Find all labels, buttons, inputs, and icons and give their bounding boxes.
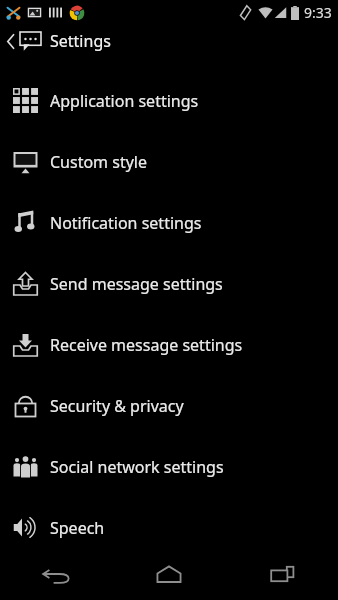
button[interactable]: Receive message settings [0, 314, 338, 375]
button[interactable]: Recent apps [225, 548, 338, 600]
button[interactable]: Social network settings [0, 436, 338, 497]
staticText: Security & privacy [50, 395, 184, 417]
staticText: Application settings [50, 90, 199, 112]
button[interactable]: Send message settings [0, 253, 338, 314]
staticText: Receive message settings [50, 334, 243, 356]
button[interactable]: Custom style [0, 131, 338, 192]
staticText: Speech [50, 517, 105, 539]
staticText: Social network settings [50, 456, 224, 478]
button[interactable]: Back [0, 548, 112, 600]
staticText: Custom style [50, 151, 147, 173]
staticText: 9:33 [304, 3, 332, 22]
staticText: Notification settings [50, 212, 202, 234]
button[interactable]: Security & privacy [0, 375, 338, 436]
button[interactable]: Application settings [0, 70, 338, 131]
button[interactable]: Notification settings [0, 192, 338, 253]
button[interactable]: Speech [0, 497, 338, 558]
button[interactable]: Home [112, 548, 225, 600]
staticText: Send message settings [50, 273, 223, 295]
button[interactable]: Navigate up [0, 24, 338, 58]
staticText: Settings [50, 30, 111, 52]
